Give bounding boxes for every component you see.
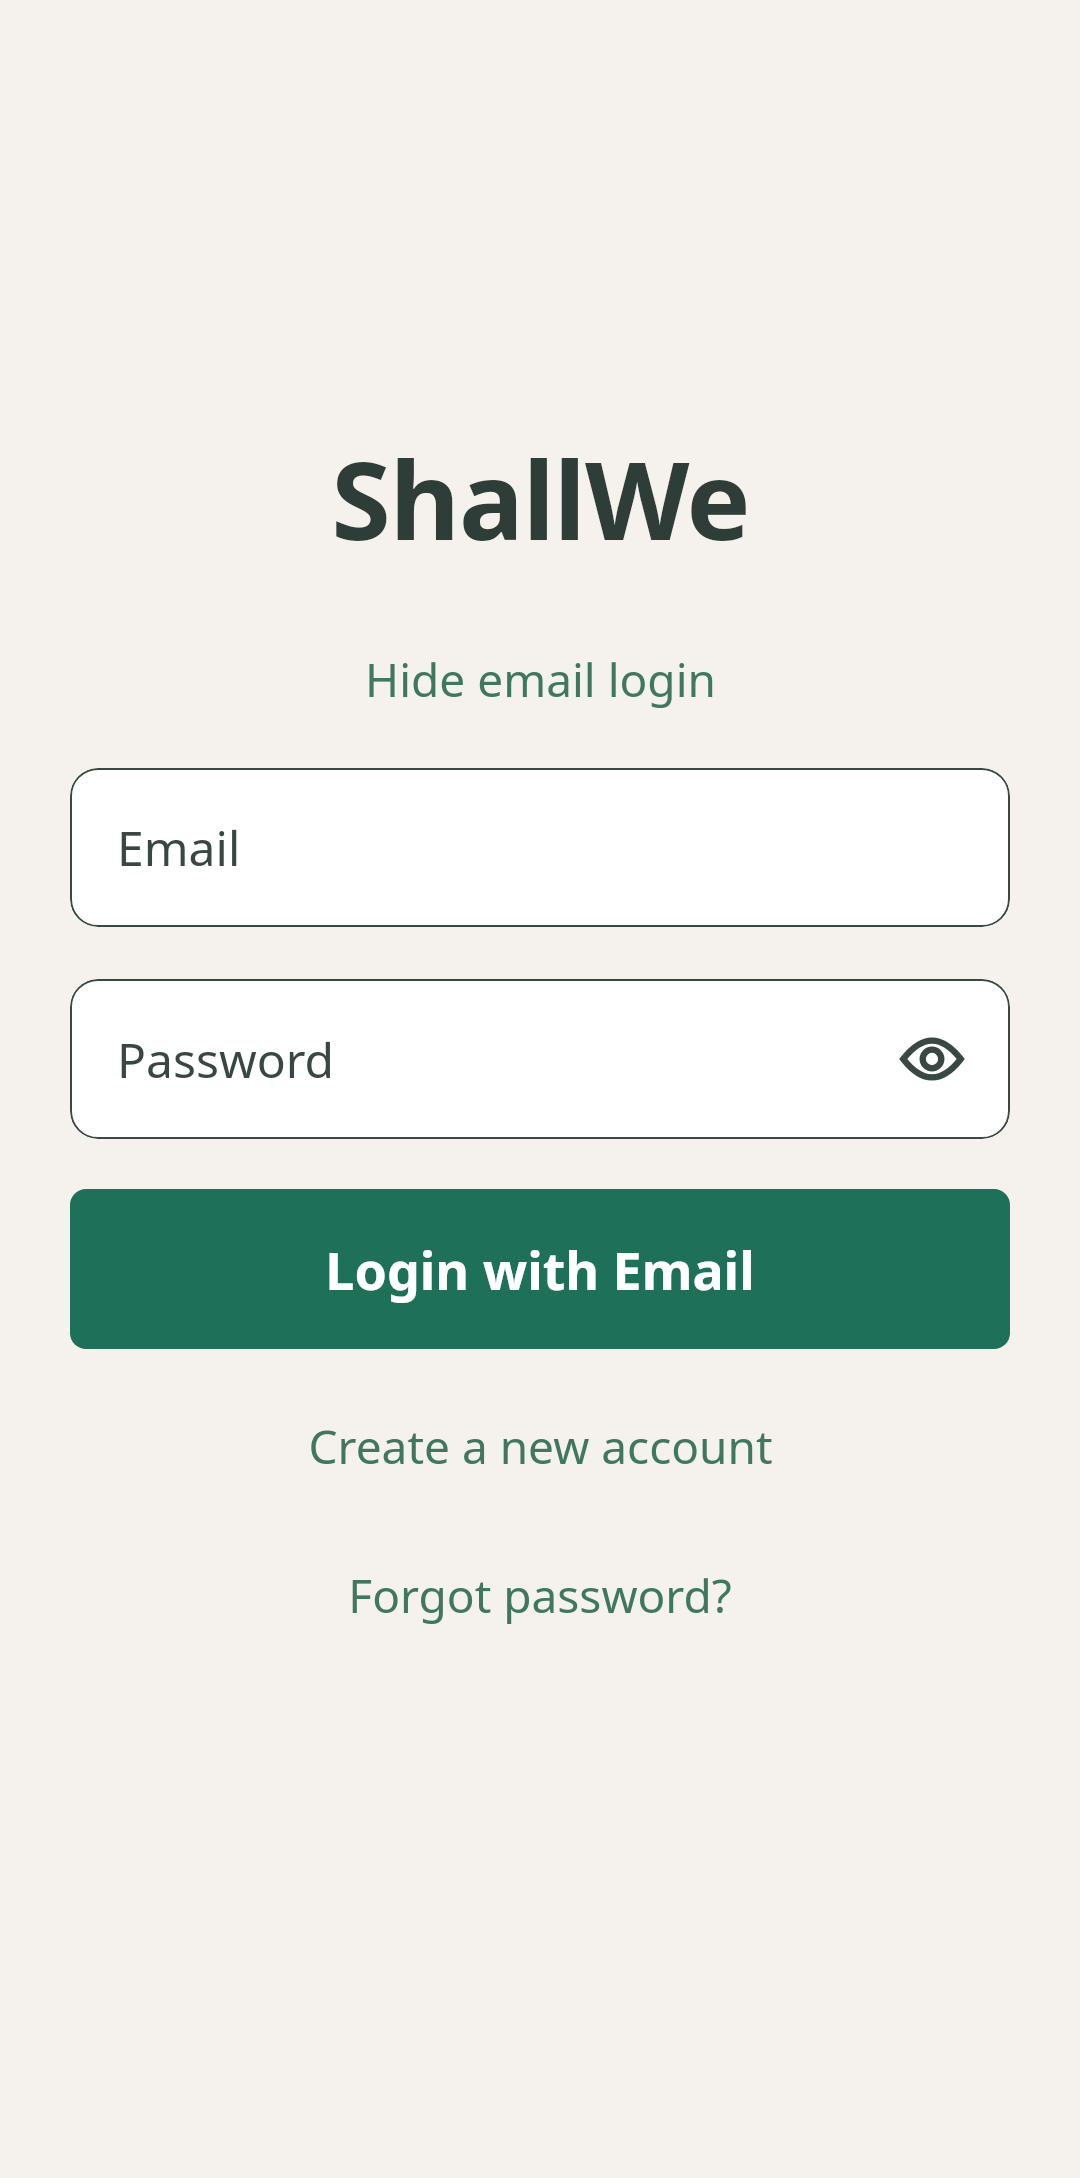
- staticText: Create a new account: [308, 1415, 773, 1478]
- staticText: Forgot password?: [348, 1564, 732, 1627]
- button[interactable]: Forgot password?: [332, 1556, 748, 1635]
- button[interactable]: Hide email login: [349, 640, 732, 719]
- staticText: ShallWe: [331, 425, 750, 572]
- button[interactable]: Email: [70, 768, 1010, 927]
- button[interactable]: Password: [70, 979, 1010, 1139]
- staticText: Login with Email: [325, 1234, 755, 1305]
- button[interactable]: Show password: [890, 1017, 974, 1101]
- button[interactable]: Create a new account: [292, 1407, 789, 1486]
- button[interactable]: Login with Email: [70, 1189, 1010, 1349]
- staticText: Hide email login: [365, 648, 716, 711]
- staticText: Email: [117, 815, 241, 880]
- staticText: Password: [117, 1027, 335, 1092]
